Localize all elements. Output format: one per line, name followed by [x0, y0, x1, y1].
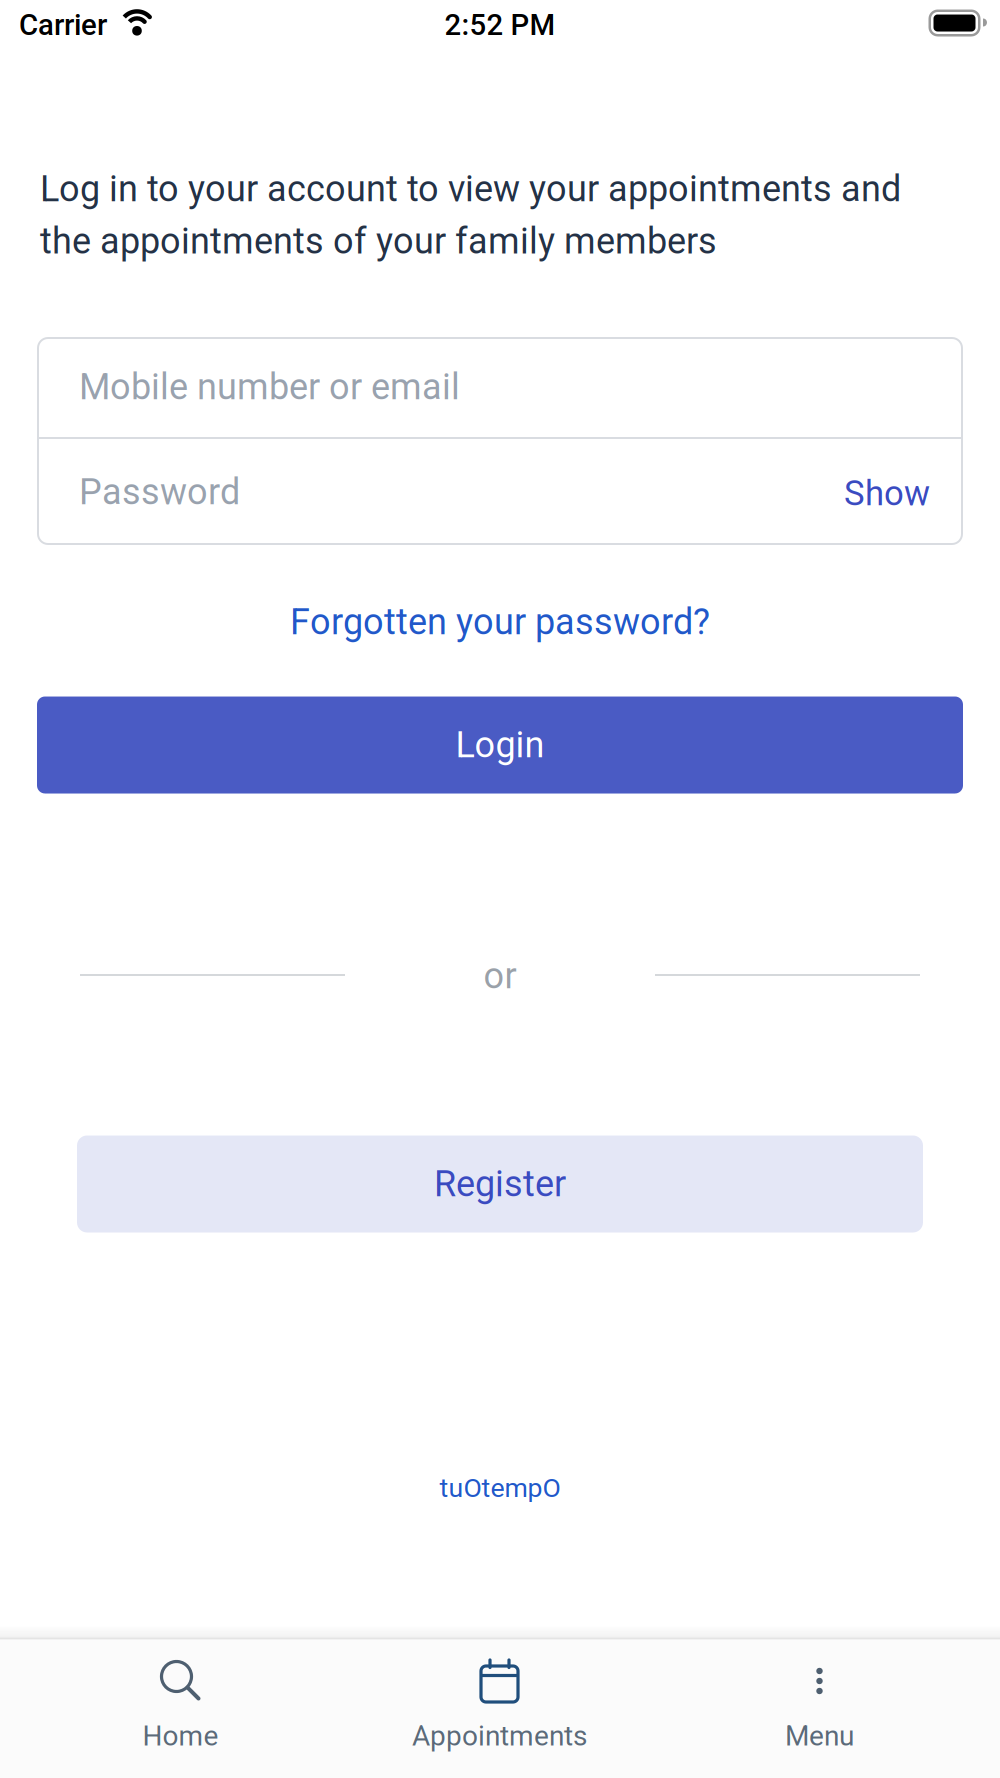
staticText: or	[483, 955, 516, 997]
button[interactable]: Menu	[679, 1638, 959, 1778]
staticText: the appointments of your family members	[40, 220, 717, 262]
staticText: Register	[434, 1163, 566, 1205]
button[interactable]: Home	[40, 1638, 320, 1778]
staticText: Log in to your account to view your appo…	[40, 168, 901, 210]
staticText: Password	[79, 471, 240, 513]
button[interactable]: Forgotten your password?	[290, 601, 710, 643]
staticText: Appointments	[412, 1720, 587, 1752]
button[interactable]: Mobile number or email	[37, 337, 963, 436]
staticText: Forgotten your password?	[290, 601, 710, 643]
staticText: tuOtempO	[439, 1472, 560, 1504]
staticText: Carrier	[19, 8, 107, 42]
staticText: 2:52 PM	[444, 8, 555, 42]
staticText: Mobile number or email	[79, 366, 460, 408]
staticText: Show	[844, 473, 930, 514]
button[interactable]: Show	[844, 473, 930, 514]
staticText: Menu	[785, 1720, 854, 1752]
button[interactable]: tuOtempO	[439, 1472, 560, 1504]
button[interactable]: Appointments	[334, 1638, 664, 1778]
button[interactable]: Login	[37, 696, 963, 793]
staticText: Home	[142, 1720, 218, 1752]
button[interactable]: Register	[77, 1135, 923, 1232]
staticText: Login	[455, 724, 544, 766]
button[interactable]: Password	[37, 441, 963, 543]
